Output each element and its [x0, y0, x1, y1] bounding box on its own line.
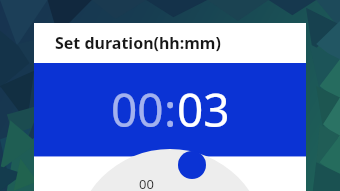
button[interactable]: Set duration(hh:mm)	[34, 23, 306, 63]
staticText: Set duration(hh:mm)	[55, 32, 221, 54]
staticText: 00	[111, 78, 164, 141]
button[interactable]: 00	[111, 78, 164, 141]
button[interactable]: Clock minute picker	[34, 157, 306, 191]
staticText: 00	[139, 175, 154, 191]
staticText: :	[164, 78, 177, 141]
staticText: 03	[177, 78, 230, 141]
button[interactable]: 03	[177, 78, 230, 141]
